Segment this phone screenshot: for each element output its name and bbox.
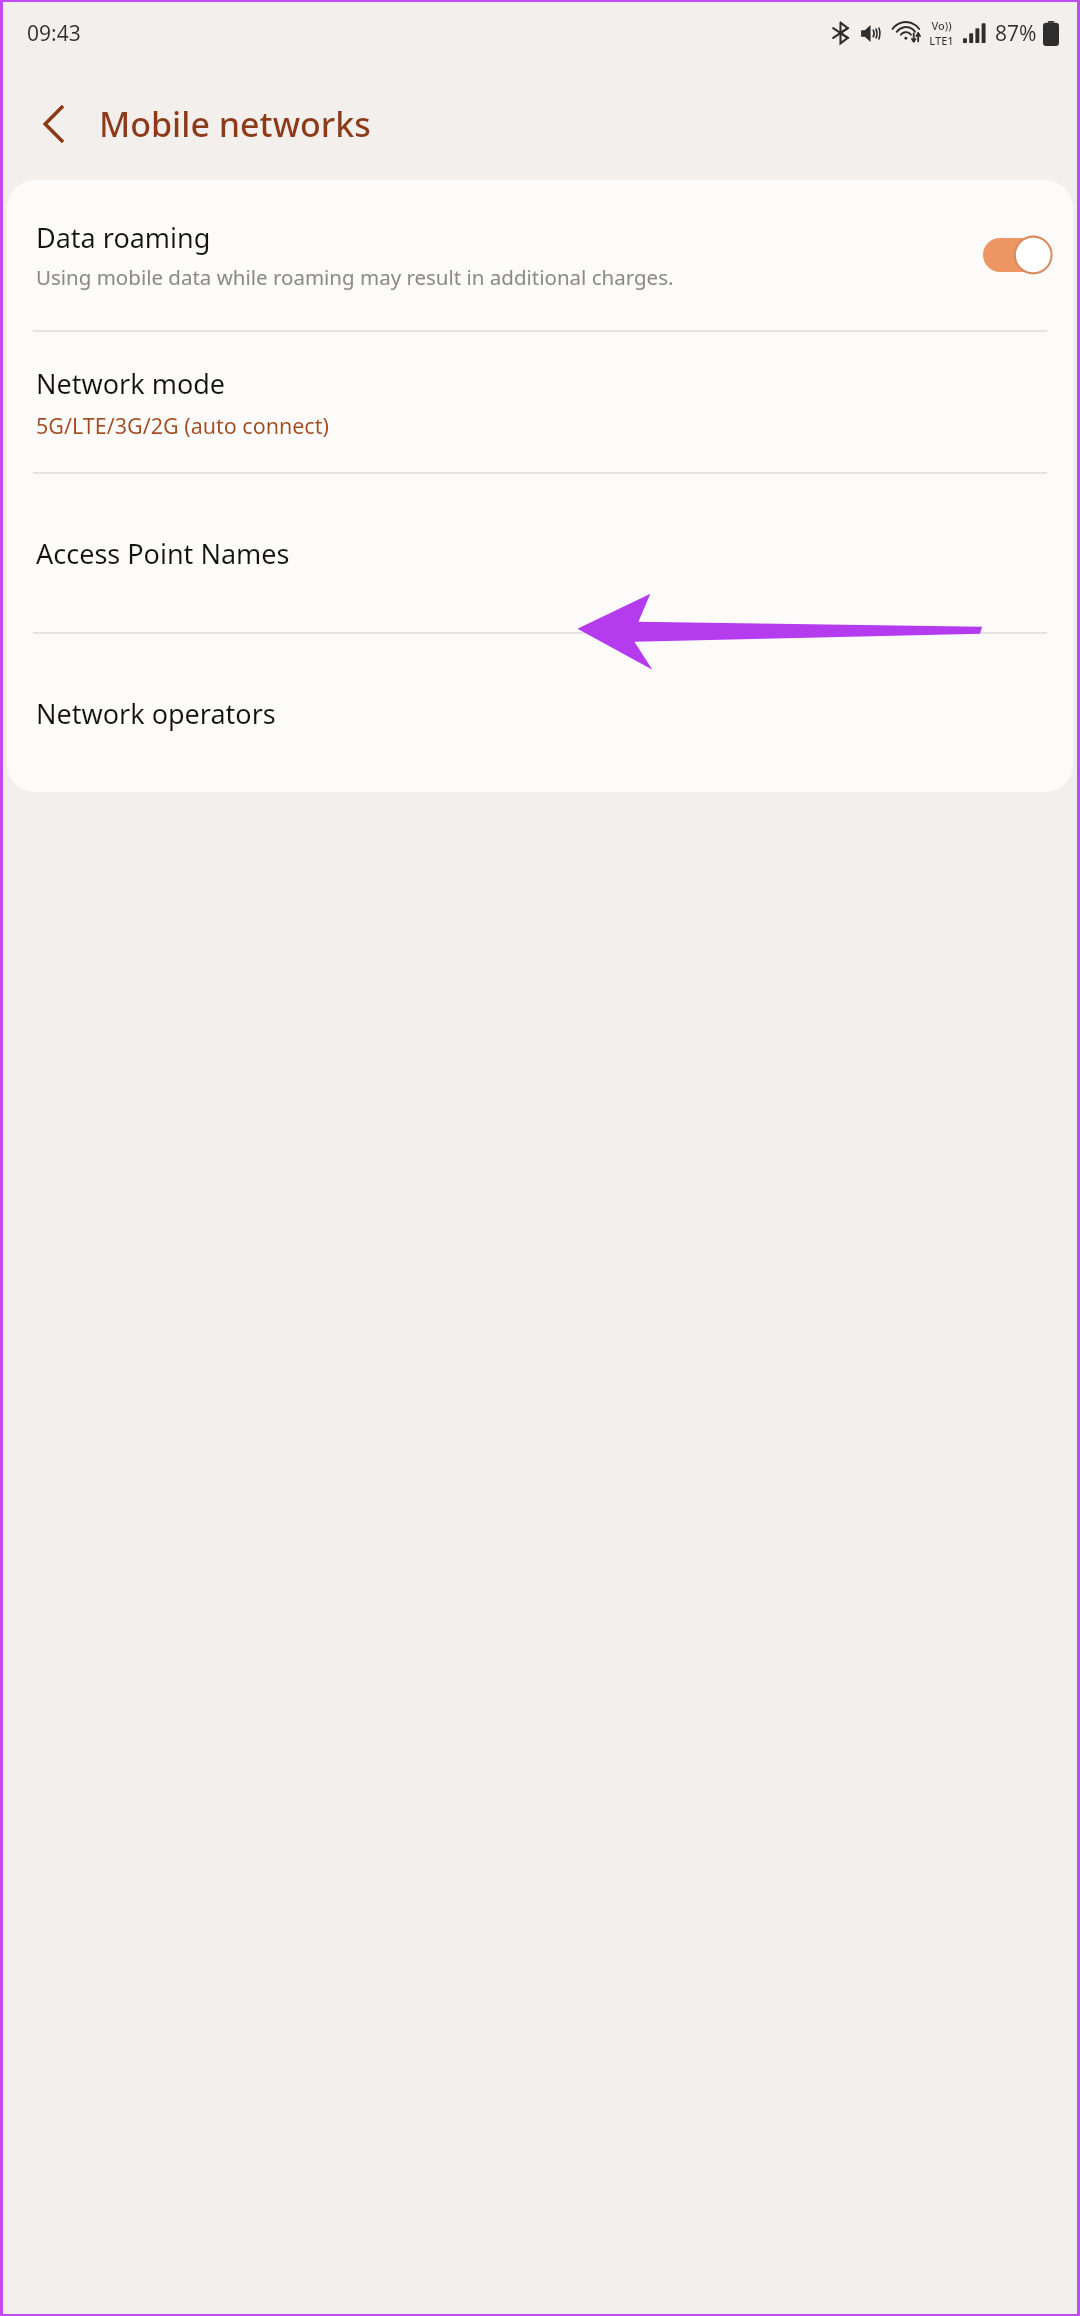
staticText: 09:43: [27, 19, 81, 48]
button[interactable]: Access Point Names: [7, 474, 1073, 632]
button[interactable]: Data roaming: [7, 180, 1073, 330]
staticText: Mobile networks: [99, 101, 371, 147]
button[interactable]: Data roaming toggle: [983, 238, 1049, 272]
button[interactable]: Network mode: [7, 332, 1073, 472]
staticText: 87%: [995, 19, 1037, 48]
button[interactable]: Back: [23, 93, 85, 155]
staticText: Network operators: [36, 695, 276, 732]
staticText: Vo)): [931, 18, 952, 33]
staticText: LTE1: [929, 33, 954, 48]
staticText: Access Point Names: [36, 535, 290, 572]
staticText: Using mobile data while roaming may resu…: [36, 263, 674, 291]
staticText: Data roaming: [36, 219, 211, 256]
button[interactable]: Network operators: [7, 634, 1073, 792]
staticText: Network mode: [36, 365, 226, 402]
staticText: 5G/LTE/3G/2G (auto connect): [36, 411, 329, 440]
